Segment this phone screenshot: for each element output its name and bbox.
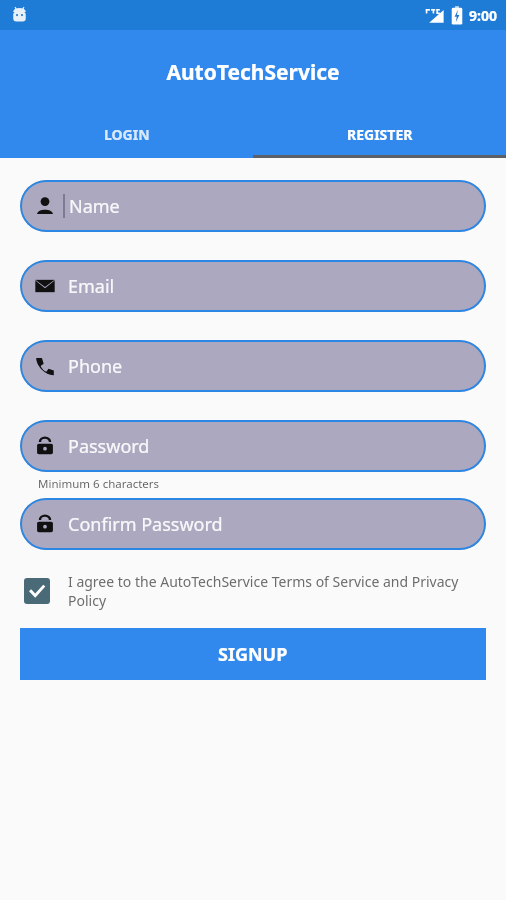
button[interactable]: I agree to the AutoTechService Terms of … [24, 572, 476, 610]
staticText: 9:00 [469, 6, 497, 25]
staticText: SIGNUP [218, 642, 288, 667]
staticText: LOGIN [104, 125, 150, 144]
staticText: AutoTechService [166, 58, 340, 87]
staticText: REGISTER [347, 125, 413, 144]
button[interactable]: Confirm Password [20, 498, 486, 550]
button[interactable]: Password [20, 420, 486, 472]
button[interactable]: Email [20, 260, 486, 312]
staticText: I agree to the AutoTechService Terms of … [68, 572, 476, 610]
button[interactable]: Phone [20, 340, 486, 392]
staticText: Minimum 6 characters [38, 476, 160, 492]
staticText: Name [69, 194, 120, 219]
staticText: Confirm Password [68, 512, 223, 537]
staticText: Phone [68, 354, 123, 379]
button[interactable]: Name [20, 180, 486, 232]
button[interactable]: REGISTER [253, 110, 506, 158]
button[interactable]: LOGIN [0, 110, 253, 158]
staticText: Password [68, 434, 150, 459]
button[interactable]: SIGNUP [20, 628, 486, 680]
staticText: Email [68, 274, 115, 299]
